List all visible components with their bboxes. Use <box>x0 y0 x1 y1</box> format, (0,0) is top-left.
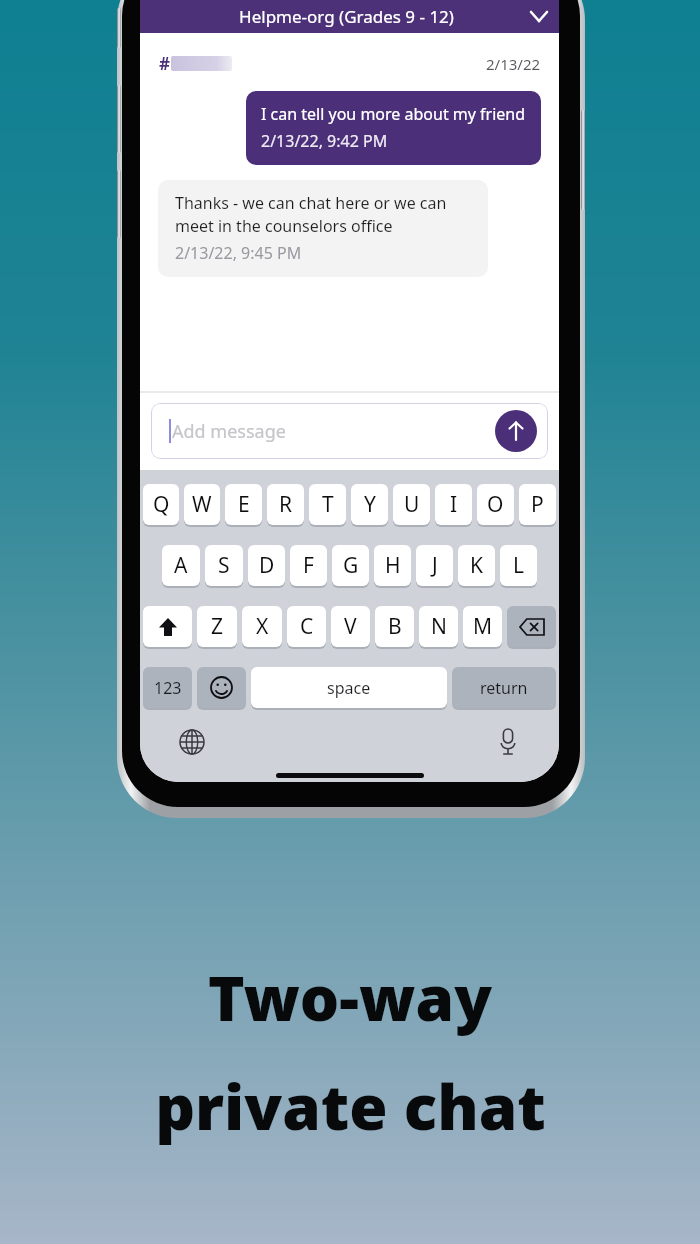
staticText: Z <box>211 612 224 641</box>
button[interactable]: P <box>519 484 556 525</box>
staticText: G <box>343 551 359 580</box>
button[interactable]: W <box>184 484 220 525</box>
staticText: H <box>385 551 401 580</box>
button[interactable]: L <box>500 545 537 586</box>
button[interactable]: A <box>162 545 200 586</box>
staticText: L <box>513 551 525 580</box>
staticText: 2/13/22, 9:45 PM <box>175 242 302 264</box>
button[interactable]: J <box>416 545 453 586</box>
staticText: 2/13/22 <box>486 54 541 74</box>
button[interactable]: Emoji <box>197 667 246 708</box>
button[interactable]: Helpme-org (Grades 9 - 12) <box>140 0 559 33</box>
button[interactable]: B <box>375 606 414 647</box>
staticText: K <box>470 551 483 580</box>
button[interactable]: T <box>309 484 346 525</box>
button[interactable]: X <box>242 606 282 647</box>
button[interactable]: D <box>248 545 285 586</box>
staticText: # <box>159 52 170 75</box>
staticText: Add message <box>172 419 495 444</box>
staticText: R <box>279 490 293 519</box>
button[interactable]: F <box>290 545 327 586</box>
staticText: T <box>322 490 334 519</box>
button[interactable]: U <box>393 484 430 525</box>
button[interactable]: 123 <box>143 667 192 708</box>
button[interactable]: Dictation <box>488 722 528 762</box>
staticText: I <box>450 490 458 519</box>
staticText: Y <box>364 490 376 519</box>
button[interactable]: H <box>374 545 411 586</box>
button[interactable]: Y <box>351 484 388 525</box>
button[interactable]: I can tell you more about my friend <box>246 91 541 165</box>
staticText: P <box>531 490 544 519</box>
staticText: 2/13/22, 9:42 PM <box>261 130 388 152</box>
staticText: return <box>480 677 528 699</box>
staticText: C <box>300 612 314 641</box>
staticText: I can tell you more about my friend <box>261 103 526 125</box>
button[interactable]: Add message <box>151 403 548 459</box>
button[interactable]: K <box>458 545 495 586</box>
button[interactable]: N <box>419 606 458 647</box>
button[interactable]: Expand channel list <box>519 0 559 33</box>
button[interactable]: Q <box>143 484 179 525</box>
button[interactable]: O <box>477 484 514 525</box>
staticText: Helpme-org (Grades 9 - 12) <box>174 5 519 28</box>
button[interactable]: Thanks - we can chat here or we can meet… <box>158 180 488 277</box>
button[interactable]: Shift <box>143 606 192 647</box>
staticText: D <box>259 551 275 580</box>
staticText: O <box>487 490 504 519</box>
button[interactable]: E <box>225 484 262 525</box>
button[interactable]: return <box>452 667 556 708</box>
staticText: 123 <box>154 677 182 699</box>
button[interactable]: C <box>287 606 326 647</box>
button[interactable]: space <box>251 667 447 708</box>
staticText: S <box>218 551 230 580</box>
staticText: X <box>256 612 269 641</box>
button[interactable]: M <box>463 606 502 647</box>
button[interactable]: S <box>205 545 243 586</box>
staticText: V <box>344 612 357 641</box>
button[interactable]: G <box>332 545 369 586</box>
staticText: B <box>388 612 402 641</box>
staticText: W <box>192 490 212 519</box>
staticText: U <box>404 490 420 519</box>
button[interactable]: Backspace <box>507 606 556 647</box>
staticText: F <box>303 551 314 580</box>
staticText: Thanks - we can chat here or we can meet… <box>175 192 471 237</box>
staticText: M <box>473 612 493 641</box>
staticText: Two-way <box>208 955 492 1039</box>
button[interactable]: R <box>267 484 304 525</box>
button[interactable]: Z <box>197 606 237 647</box>
staticText: private chat <box>155 1064 546 1148</box>
button[interactable]: Change keyboard language <box>172 722 212 762</box>
button[interactable]: V <box>331 606 370 647</box>
staticText: A <box>174 551 188 580</box>
staticText: J <box>432 551 438 580</box>
button[interactable]: I <box>435 484 472 525</box>
staticText: E <box>238 490 250 519</box>
staticText: N <box>431 612 447 641</box>
staticText: space <box>327 677 371 699</box>
button[interactable]: Send message <box>495 410 537 452</box>
staticText: Q <box>153 490 170 519</box>
